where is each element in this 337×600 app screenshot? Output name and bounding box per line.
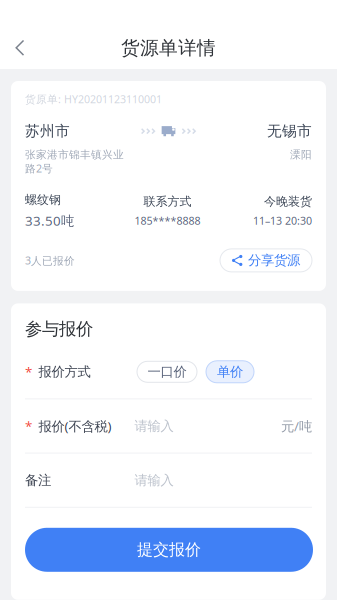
staticText: 3人已报价 xyxy=(25,253,75,267)
staticText: 联系方式 xyxy=(143,194,191,209)
staticText: 185****8888 xyxy=(134,213,200,228)
staticText: 今晚装货 xyxy=(264,194,312,209)
button[interactable]: 一口价 xyxy=(137,361,197,382)
staticText: 苏州市 xyxy=(25,122,70,140)
staticText: 螺纹钢 xyxy=(25,192,61,207)
staticText: 一口价 xyxy=(147,364,186,380)
staticText: 备注 xyxy=(25,472,51,488)
staticText: 请输入 xyxy=(134,472,173,488)
staticText: 提交报价 xyxy=(137,540,201,560)
staticText: 货原单: HY20201123110001 xyxy=(25,92,162,106)
staticText: 报价方式 xyxy=(38,364,90,380)
staticText: 货源单详情 xyxy=(121,36,216,59)
staticText: 溧阳 xyxy=(290,148,312,161)
button[interactable]: 提交报价 xyxy=(25,528,313,572)
staticText: 元/吨 xyxy=(281,417,312,435)
staticText: 请输入 xyxy=(134,418,173,434)
staticText: 单价 xyxy=(217,364,243,380)
staticText: 无锡市 xyxy=(267,122,312,140)
staticText: * xyxy=(25,417,32,435)
staticText: 11–13 20:30 xyxy=(253,213,312,228)
staticText: 张家港市锦丰镇兴业路2号 xyxy=(25,148,124,175)
staticText: 参与报价 xyxy=(25,318,93,340)
staticText: 分享货源 xyxy=(248,252,300,269)
button[interactable]: Back xyxy=(0,28,40,68)
button[interactable]: 单价 xyxy=(206,361,254,383)
staticText: 33.50吨 xyxy=(25,212,74,229)
staticText: 报价(不含税) xyxy=(38,417,111,435)
button[interactable]: 分享货源 xyxy=(220,249,312,272)
staticText: * xyxy=(25,363,32,381)
